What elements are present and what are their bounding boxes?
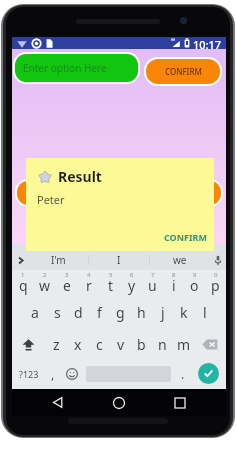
button[interactable]: 0 [205, 270, 226, 296]
staticText: 3 [65, 271, 69, 279]
staticText: o [190, 276, 199, 295]
button[interactable]: d [68, 296, 89, 329]
button[interactable]: n [152, 329, 173, 359]
staticText: i [172, 276, 176, 295]
button[interactable]: z [45, 329, 67, 359]
button[interactable] [17, 181, 71, 205]
staticText: Result [58, 167, 102, 186]
staticText: y [128, 276, 136, 295]
button[interactable]: I [89, 252, 149, 268]
staticText: c [96, 335, 103, 354]
staticText: s [54, 303, 61, 322]
button[interactable]: . [174, 359, 191, 388]
staticText: 0 [214, 271, 218, 279]
button[interactable]: Recents [165, 389, 195, 416]
staticText: I [117, 253, 121, 267]
button[interactable] [167, 181, 221, 205]
staticText: j [161, 303, 165, 322]
button[interactable]: Enter [191, 359, 226, 388]
staticText: f [97, 303, 102, 322]
staticText: p [211, 276, 220, 295]
staticText: b [137, 335, 146, 354]
button[interactable]: l [194, 296, 215, 329]
staticText: we [173, 253, 187, 267]
button[interactable]: 3 [56, 270, 78, 296]
button[interactable]: ?123 [12, 359, 45, 388]
staticText: k [180, 303, 188, 322]
staticText: , [51, 366, 55, 382]
staticText: g [116, 303, 125, 322]
button[interactable]: s [46, 296, 68, 329]
button[interactable]: f [89, 296, 110, 329]
button[interactable]: Shift [12, 329, 45, 359]
staticText: 8 [172, 271, 176, 279]
staticText: l [203, 303, 207, 322]
staticText: Peter [37, 192, 65, 207]
button[interactable]: 4 [78, 270, 100, 296]
button[interactable]: 7 [142, 270, 163, 296]
staticText: 4 [87, 271, 91, 279]
staticText: 7 [151, 271, 155, 279]
button[interactable]: CONFIRM [159, 227, 212, 247]
staticText: n [158, 335, 167, 354]
button[interactable]: x [67, 329, 89, 359]
button[interactable]: b [131, 329, 152, 359]
staticText: 5 [109, 271, 113, 279]
staticText: w [39, 276, 51, 295]
staticText: . [181, 366, 185, 382]
button[interactable]: Emoji [60, 359, 83, 388]
staticText: r [86, 276, 92, 295]
button[interactable]: 5 [100, 270, 121, 296]
button[interactable]: I'm [28, 252, 88, 268]
button[interactable]: 2 [34, 270, 56, 296]
button[interactable]: we [150, 252, 210, 268]
staticText: 10:17 [193, 37, 222, 49]
button[interactable]: v [110, 329, 131, 359]
button[interactable]: Back [43, 389, 73, 416]
button[interactable]: 9 [184, 270, 205, 296]
button[interactable]: Voice input [210, 252, 226, 268]
button[interactable]: m [173, 329, 194, 359]
button[interactable]: Home [104, 389, 134, 416]
staticText: 6 [130, 271, 134, 279]
staticText: m [177, 335, 191, 354]
staticText: a [31, 303, 39, 322]
staticText: q [19, 276, 28, 295]
staticText: 1 [21, 271, 25, 279]
staticText: e [63, 276, 71, 295]
button[interactable]: CONFIRM [146, 59, 220, 84]
staticText: t [108, 276, 114, 295]
button[interactable]: k [173, 296, 194, 329]
button[interactable]: a [24, 296, 46, 329]
staticText: I'm [51, 253, 66, 267]
button[interactable]: , [45, 359, 60, 388]
button[interactable]: 8 [163, 270, 184, 296]
button[interactable]: h [131, 296, 152, 329]
staticText: u [148, 276, 157, 295]
staticText: z [53, 335, 60, 354]
button[interactable]: j [152, 296, 173, 329]
button[interactable]: g [110, 296, 131, 329]
staticText: 2 [43, 271, 47, 279]
button[interactable]: 1 [12, 270, 34, 296]
button[interactable]: Enter option Here [15, 54, 138, 82]
staticText: h [137, 303, 146, 322]
button[interactable]: c [89, 329, 110, 359]
staticText: x [74, 335, 82, 354]
staticText: CONFIRM [164, 231, 207, 243]
staticText: d [74, 303, 83, 322]
button[interactable]: More suggestions [12, 252, 28, 268]
staticText: v [117, 335, 125, 354]
staticText: ?123 [19, 368, 39, 380]
button[interactable]: Backspace [194, 329, 226, 359]
button[interactable]: 6 [121, 270, 142, 296]
staticText: CONFIRM [165, 66, 202, 77]
staticText: Enter option Here [23, 61, 107, 75]
staticText: 9 [193, 271, 197, 279]
